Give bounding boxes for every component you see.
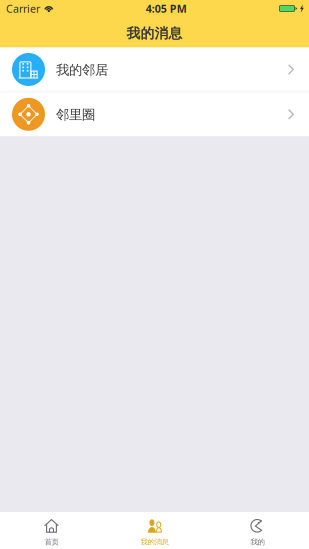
button[interactable]: 我的 bbox=[206, 512, 309, 549]
staticText: 我的消息 bbox=[126, 25, 182, 42]
staticText: 我的消息 bbox=[140, 537, 168, 547]
staticText: 我的邻居 bbox=[56, 62, 108, 78]
button[interactable]: 我的邻居 bbox=[0, 47, 309, 91]
staticText: Carrier bbox=[6, 1, 40, 16]
button[interactable]: 邻里圈 bbox=[0, 92, 309, 136]
staticText: 我的 bbox=[250, 537, 264, 547]
button[interactable]: 首页 bbox=[0, 512, 103, 549]
button[interactable]: 我的消息 bbox=[103, 512, 206, 549]
staticText: 4:05 PM bbox=[146, 1, 187, 16]
staticText: 首页 bbox=[44, 537, 58, 547]
staticText: 邻里圈 bbox=[56, 106, 95, 123]
